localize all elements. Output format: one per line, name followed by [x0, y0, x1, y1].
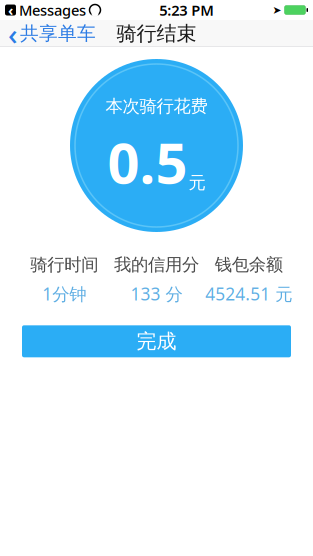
staticText: 5:23 PM — [159, 0, 214, 20]
button[interactable]: 完成 — [22, 325, 291, 357]
staticText: 骑行结束 — [116, 21, 196, 46]
staticText: Messages — [19, 0, 86, 20]
staticText: 1分钟 — [42, 282, 86, 305]
staticText: 4524.51 元 — [205, 282, 292, 305]
button[interactable]: ‹ — [0, 20, 104, 47]
staticText: 共享单车 — [20, 22, 96, 45]
staticText: 我的信用分 — [114, 254, 199, 275]
staticText: 本次骑行花费 — [105, 96, 207, 117]
staticText: ‹ — [8, 0, 13, 20]
staticText: 133 分 — [130, 282, 182, 305]
staticText: 骑行时间 — [30, 254, 98, 275]
staticText: ‹ — [8, 14, 18, 53]
staticText: 元 — [188, 172, 205, 193]
staticText: ➤ — [272, 4, 281, 16]
staticText: 钱包余额 — [215, 254, 283, 275]
staticText: 完成 — [136, 329, 176, 354]
staticText: 0.5 — [107, 125, 187, 199]
